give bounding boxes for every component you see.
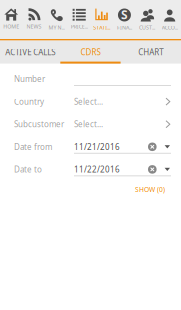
- button[interactable]: SHOW (0): [132, 181, 168, 198]
- staticText: Date to: [14, 164, 42, 175]
- staticText: Country: [14, 96, 44, 107]
- staticText: HOME: [3, 23, 19, 30]
- button[interactable]: PRICE...: [68, 0, 90, 39]
- staticText: Date from: [14, 141, 52, 152]
- staticText: STATI...: [93, 24, 110, 31]
- staticText: MY N...: [49, 24, 65, 31]
- staticText: Subcustomer: [14, 119, 64, 129]
- button[interactable]: NEWS: [23, 0, 45, 39]
- staticText: CHART: [138, 47, 163, 57]
- button[interactable]: FINA...: [113, 0, 136, 39]
- staticText: Select...: [74, 119, 103, 129]
- button[interactable]: STATI...: [90, 0, 113, 39]
- staticText: ACTIVE CALLS: [5, 47, 55, 57]
- button[interactable]: ACTIVE CALLS: [0, 41, 60, 64]
- staticText: SHOW (0): [135, 185, 165, 194]
- button[interactable]: HOME: [0, 0, 23, 39]
- staticText: PRICE...: [71, 23, 88, 30]
- staticText: CUST...: [139, 24, 155, 31]
- staticText: 11/21/2016: [74, 141, 120, 152]
- button[interactable]: ACCO...: [158, 0, 181, 39]
- button[interactable]: MY N...: [45, 0, 68, 39]
- button[interactable]: CDRS: [60, 41, 121, 64]
- staticText: CDRS: [80, 47, 100, 57]
- staticText: S: [121, 6, 128, 22]
- staticText: FINA...: [117, 24, 132, 31]
- button[interactable]: CHART: [121, 41, 181, 64]
- staticText: 11/22/2016: [74, 164, 120, 175]
- staticText: Select...: [74, 96, 103, 107]
- staticText: NEWS: [26, 23, 41, 30]
- button[interactable]: CUST...: [136, 0, 158, 39]
- staticText: Number: [14, 74, 45, 84]
- staticText: ACCO...: [162, 24, 178, 31]
